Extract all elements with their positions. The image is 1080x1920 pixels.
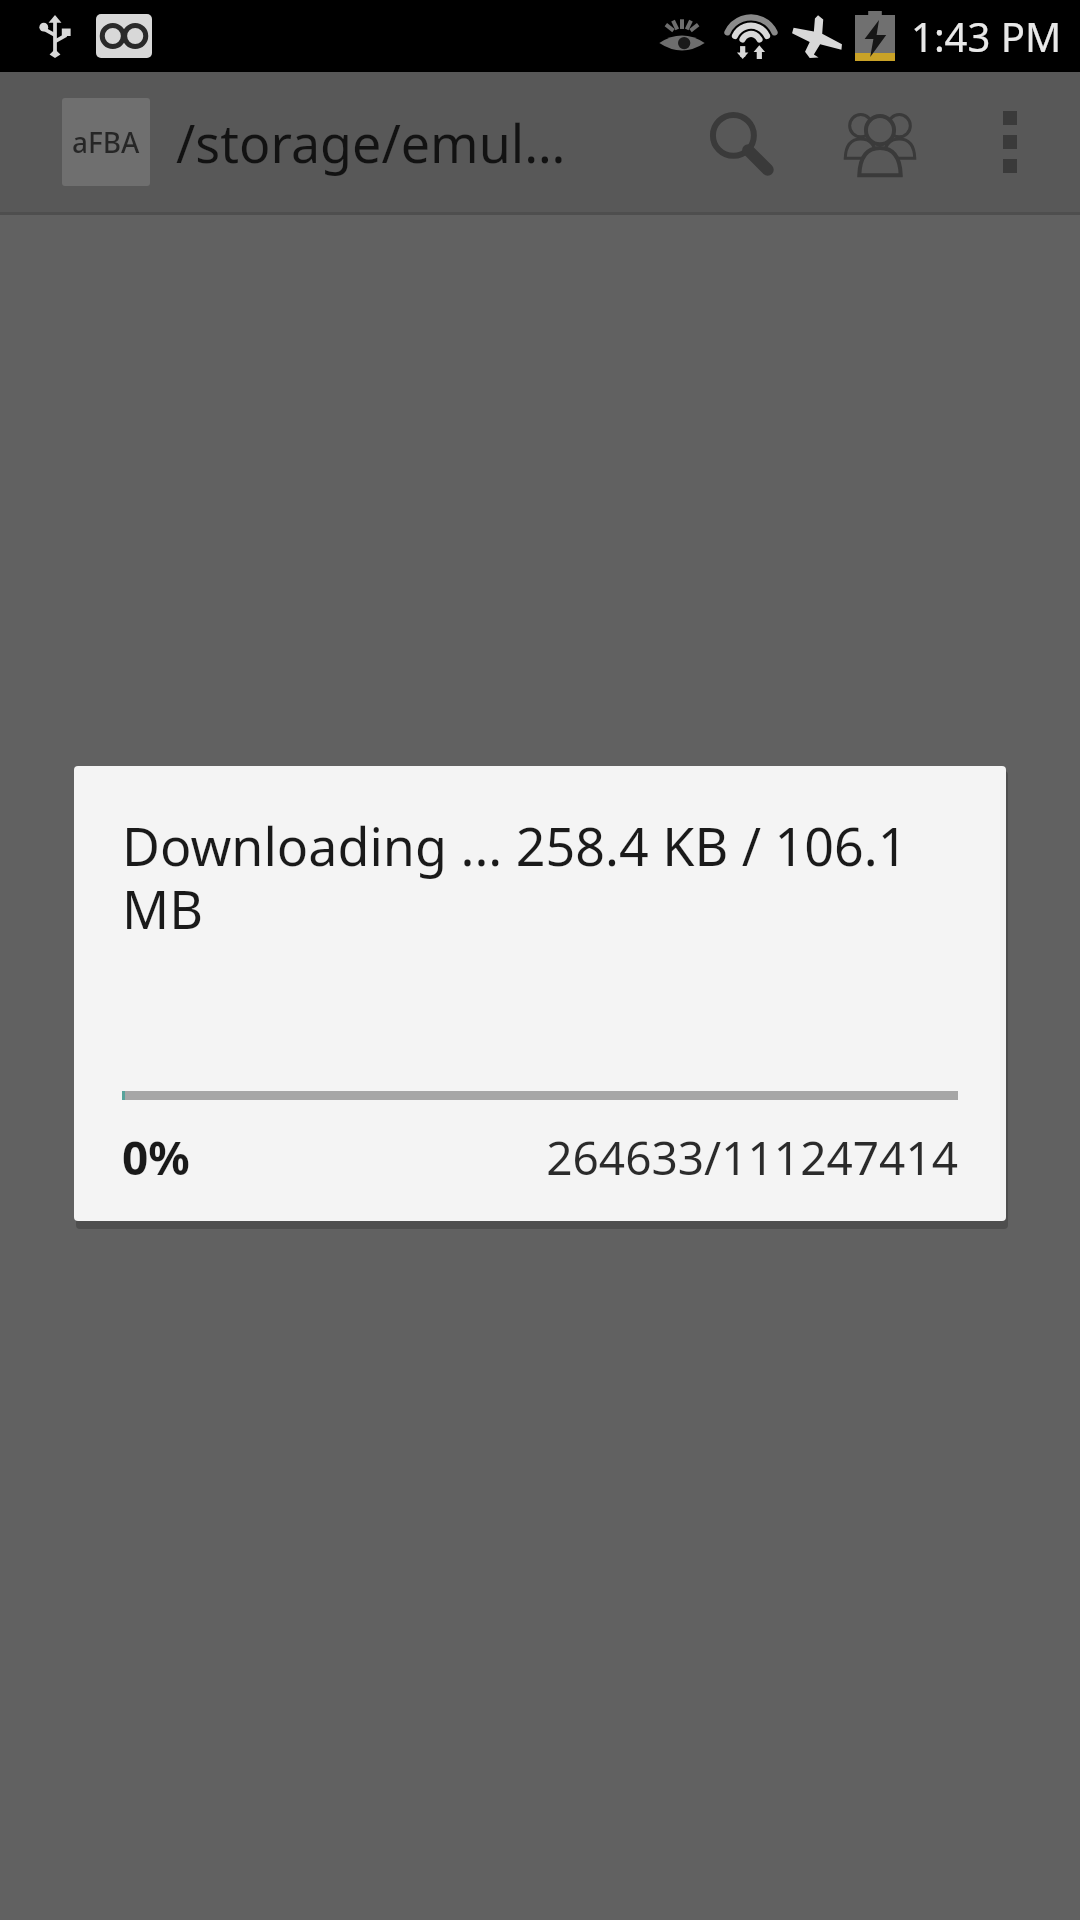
button[interactable]: Search <box>670 72 810 212</box>
staticText: 264633/111247414 <box>546 1126 958 1189</box>
staticText: Downloading ... 258.4 KB / 106.1 MB <box>122 810 958 944</box>
button[interactable]: Contacts <box>810 72 950 212</box>
staticText: aFBA <box>72 123 140 161</box>
staticText: 1:43 PM <box>911 9 1062 63</box>
button[interactable]: More options <box>950 82 1070 202</box>
staticText: /storage/emul… <box>176 107 566 178</box>
staticText: 0% <box>122 1126 190 1189</box>
button[interactable]: Downloading ... 258.4 KB / 106.1 MB <box>74 766 1006 1221</box>
